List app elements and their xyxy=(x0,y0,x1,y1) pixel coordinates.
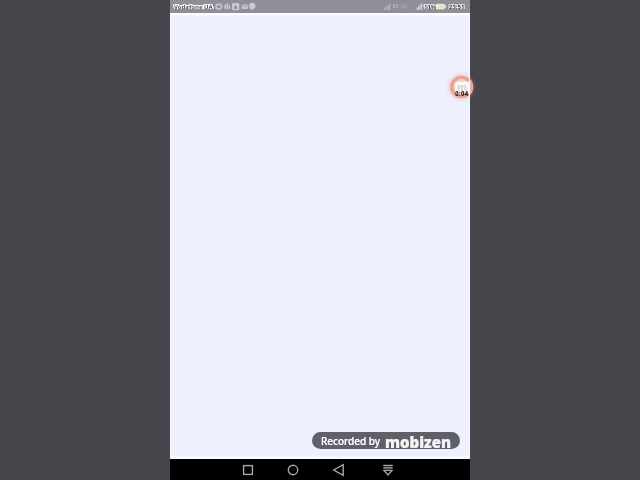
staticText: 23:51 xyxy=(450,3,466,11)
button[interactable]: Recents xyxy=(229,459,267,480)
staticText: 11% xyxy=(423,3,436,11)
staticText: 23:51 xyxy=(449,3,465,11)
staticText: 23:51 xyxy=(449,3,465,11)
staticText: 11% xyxy=(424,3,437,11)
button[interactable]: Hide keyboard xyxy=(369,459,407,480)
staticText: mobizen xyxy=(385,432,452,449)
staticText: 11% xyxy=(424,3,437,11)
button[interactable]: Mobizen recorder xyxy=(442,70,476,106)
staticText: 11% xyxy=(423,3,436,11)
staticText: Recorded by xyxy=(321,434,381,448)
staticText: Vodafone UA xyxy=(174,3,213,11)
staticText: Vodafone UA xyxy=(173,3,212,11)
staticText: 11% xyxy=(424,2,437,10)
staticText: Vodafone UA xyxy=(173,2,212,10)
staticText: 23:51 xyxy=(449,2,465,10)
staticText: 23:51 xyxy=(450,2,466,10)
button[interactable]: Home xyxy=(274,459,312,480)
staticText: 23:51 xyxy=(448,3,464,11)
button[interactable]: Back xyxy=(320,459,358,480)
staticText: Vodafone UA xyxy=(174,3,213,11)
staticText: 23:51 xyxy=(450,3,466,11)
staticText: 0:04 xyxy=(455,89,469,98)
staticText: Vodafone UA xyxy=(175,3,214,11)
button[interactable]: Recorded by xyxy=(312,432,460,449)
staticText: 11% xyxy=(424,3,437,11)
staticText: Vodafone UA xyxy=(175,2,214,10)
staticText: 11% xyxy=(424,2,437,10)
staticText: 11% xyxy=(424,3,437,11)
staticText: Vodafone UA xyxy=(173,3,212,11)
staticText: 11% xyxy=(423,2,436,10)
staticText: m xyxy=(457,80,467,94)
staticText: 23:51 xyxy=(448,3,464,11)
staticText: Vodafone UA xyxy=(175,3,214,11)
staticText: Vodafone UA xyxy=(174,2,213,10)
staticText: 23:51 xyxy=(448,2,464,10)
